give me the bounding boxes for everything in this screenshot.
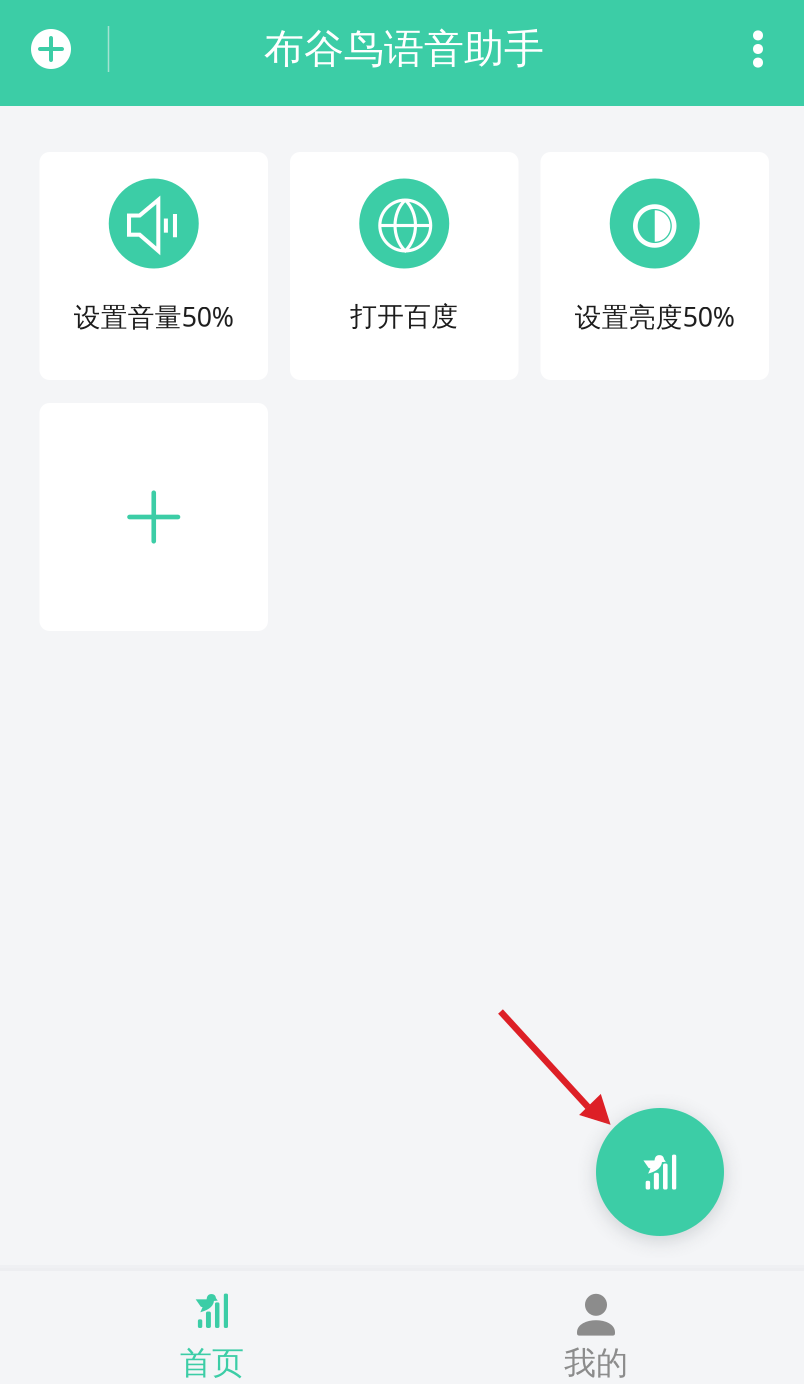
staticText: 打开百度 (350, 300, 458, 333)
button[interactable]: 设置亮度50% (540, 152, 769, 380)
button[interactable]: 我的 (538, 1265, 654, 1384)
staticText: 布谷鸟语音助手 (264, 24, 544, 73)
button[interactable]: 设置音量50% (39, 152, 268, 380)
staticText: 首页 (180, 1343, 244, 1383)
button[interactable]: Add command (39, 403, 268, 631)
button[interactable]: 首页 (154, 1265, 270, 1384)
button[interactable]: More options (727, 15, 789, 83)
staticText: 设置亮度50% (575, 299, 735, 334)
button[interactable]: Add (17, 15, 85, 83)
button[interactable]: Voice assistant (596, 1108, 724, 1236)
staticText: 设置音量50% (74, 299, 234, 334)
button[interactable]: 打开百度 (290, 152, 518, 380)
staticText: 我的 (564, 1343, 628, 1383)
